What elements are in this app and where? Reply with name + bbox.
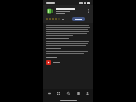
button[interactable]: Books — [74, 90, 82, 97]
button[interactable]: Profile — [83, 90, 91, 97]
button[interactable]: Search — [64, 90, 72, 97]
button[interactable]: Games — [45, 90, 53, 97]
button[interactable]: More options — [87, 8, 90, 14]
button[interactable] — [72, 17, 85, 21]
button[interactable]: Apps — [54, 90, 62, 97]
button[interactable]: Open video — [46, 60, 51, 65]
button[interactable]: More options — [46, 7, 90, 15]
